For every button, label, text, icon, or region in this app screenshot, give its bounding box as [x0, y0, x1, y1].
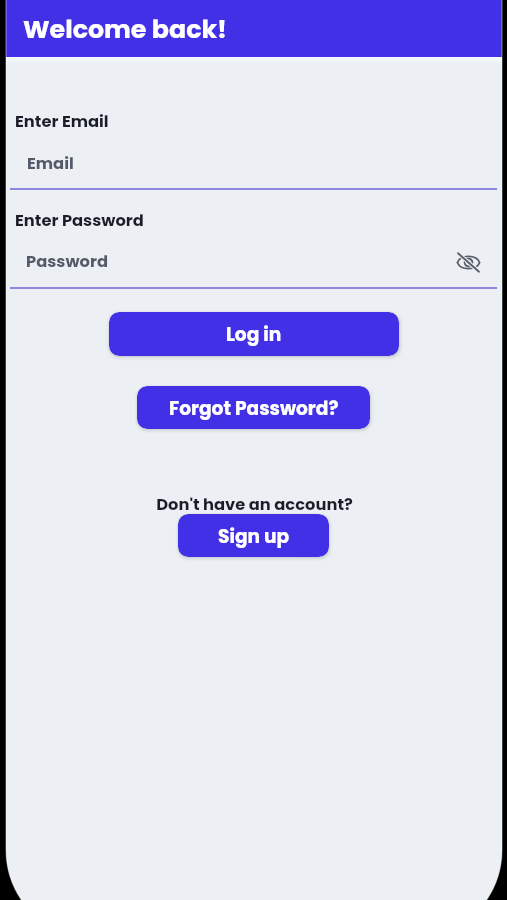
staticText: Log in [226, 321, 282, 347]
staticText: Enter Email [15, 110, 109, 133]
button[interactable]: Sign up [178, 514, 329, 557]
staticText: Don't have an account? [156, 493, 353, 516]
staticText: Enter Password [15, 209, 144, 232]
button[interactable]: Forgot Password? [137, 386, 370, 429]
staticText: Sign up [218, 523, 290, 549]
button[interactable]: Show password [449, 243, 487, 281]
button[interactable]: Log in [109, 312, 399, 356]
staticText: Welcome back! [23, 11, 228, 46]
staticText: Forgot Password? [169, 395, 339, 421]
staticText: Password [26, 250, 108, 273]
staticText: Email [27, 152, 74, 175]
